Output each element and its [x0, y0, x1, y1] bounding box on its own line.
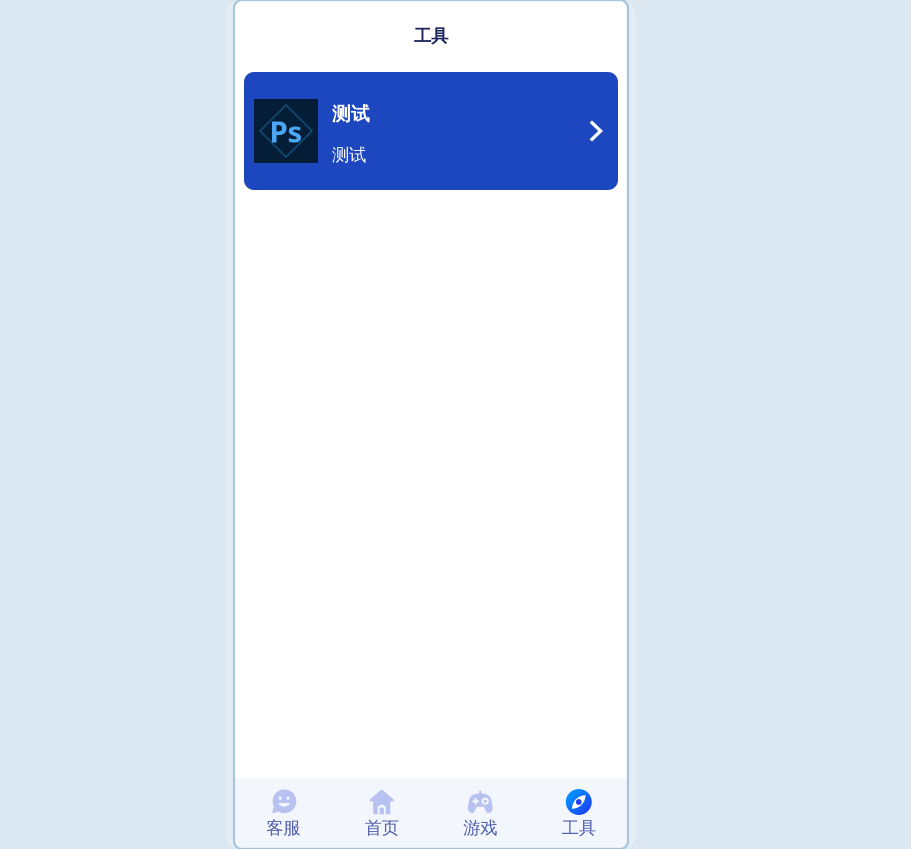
staticText: Ps: [269, 111, 302, 150]
staticText: 首页: [365, 817, 399, 839]
button[interactable]: 客服: [234, 778, 332, 849]
staticText: 测试: [332, 102, 370, 125]
staticText: 工具: [562, 817, 596, 839]
button[interactable]: 游戏: [431, 778, 529, 849]
button[interactable]: 工具: [529, 778, 628, 849]
staticText: 客服: [266, 817, 300, 839]
staticText: 测试: [332, 144, 366, 166]
staticText: 工具: [414, 25, 448, 47]
button[interactable]: Ps: [244, 72, 618, 190]
staticText: 游戏: [463, 817, 497, 839]
button[interactable]: 首页: [332, 778, 431, 849]
